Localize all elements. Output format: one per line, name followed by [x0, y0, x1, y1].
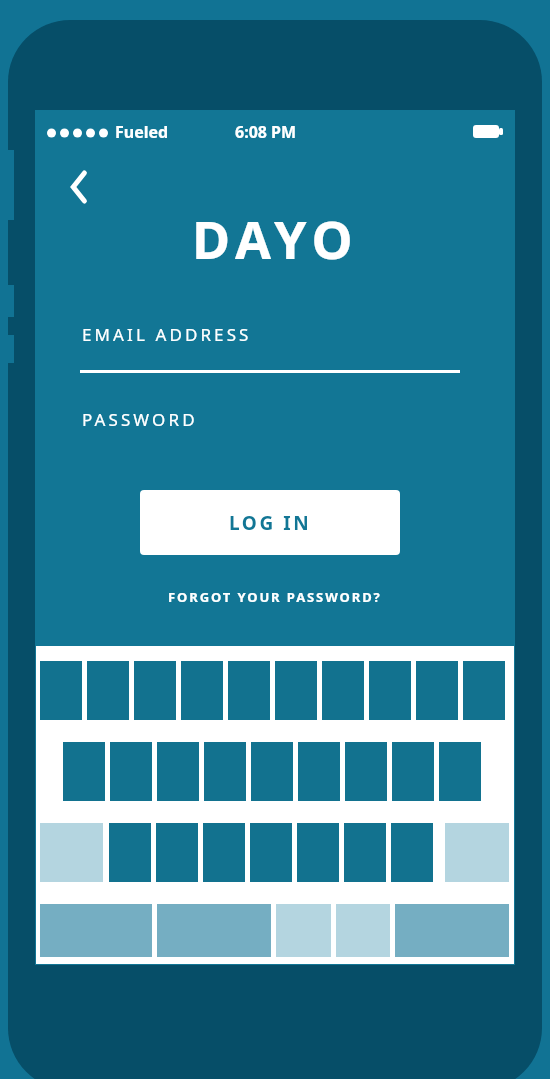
- button[interactable]: Back: [57, 165, 101, 209]
- staticText: LOG IN: [229, 510, 312, 536]
- staticText: 6:08 PM: [235, 121, 297, 143]
- staticText: DAYO: [192, 203, 359, 265]
- staticText: Fueled: [115, 121, 169, 143]
- button[interactable]: LOG IN: [140, 490, 400, 555]
- staticText: PASSWORD: [82, 408, 198, 431]
- button[interactable]: FORGOT YOUR PASSWORD?: [135, 580, 415, 614]
- staticText: EMAIL ADDRESS: [82, 323, 252, 346]
- staticText: FORGOT YOUR PASSWORD?: [168, 588, 382, 606]
- button[interactable]: EMAIL ADDRESS: [75, 315, 465, 365]
- button[interactable]: PASSWORD: [75, 400, 465, 450]
